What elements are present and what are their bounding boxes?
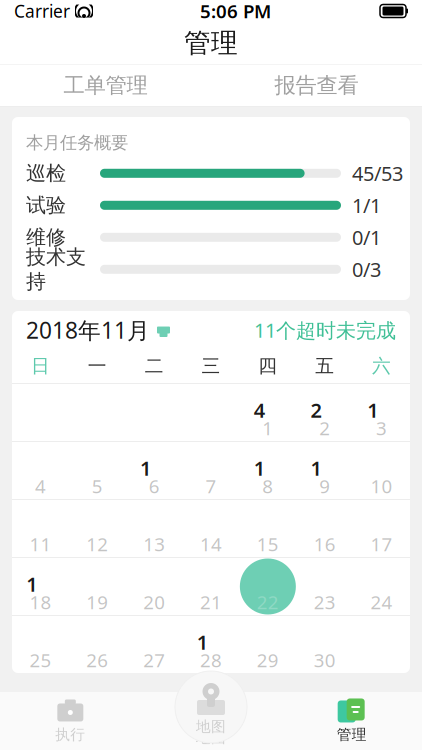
button[interactable] [296,500,353,557]
staticText: 9 [319,474,330,498]
staticText: 管理 [337,725,367,743]
staticText: 2 [310,397,321,423]
staticText [313,571,318,597]
staticText: 地图 [196,728,226,746]
button[interactable] [183,500,239,557]
staticText: 维修 [26,225,66,250]
button[interactable] [69,616,126,673]
button[interactable]: 执行 [0,693,141,749]
staticText: 28 [200,648,222,672]
staticText: 10 [371,474,393,498]
button[interactable] [12,500,69,557]
staticText: 0/3 [352,256,381,283]
staticText [143,571,148,597]
staticText: 3 [376,416,387,440]
button[interactable]: 2018年11月 [26,315,170,345]
button[interactable] [126,500,183,557]
staticText [313,629,318,655]
button[interactable]: 11个超时未完成 [254,317,396,343]
staticText: 19 [86,590,108,614]
staticText: 29 [257,648,279,672]
staticText: 45/53 [352,160,403,187]
staticText: 管理 [184,27,238,59]
button[interactable]: 工单管理 [0,64,211,106]
staticText [86,629,91,655]
button[interactable] [296,558,353,615]
button[interactable]: 1 [12,558,69,615]
button[interactable] [353,442,410,499]
staticText: 22 [257,590,279,614]
button[interactable] [69,500,126,557]
button[interactable]: 4 [239,384,296,441]
button[interactable]: 1 [126,442,183,499]
button[interactable]: 1 [353,384,410,441]
staticText: 7 [205,474,216,498]
staticText: 0/1 [352,224,381,251]
button[interactable] [353,500,410,557]
button[interactable] [126,616,183,673]
button[interactable]: 报告查看 [211,64,422,106]
staticText: 三 [201,354,220,377]
staticText: 23 [314,590,336,614]
staticText: 1 [140,455,151,481]
staticText: 27 [143,648,165,672]
staticText: 试验 [26,193,66,218]
button[interactable] [12,616,69,673]
button[interactable] [183,442,239,499]
staticText: 17 [371,532,393,556]
staticText: 24 [371,590,393,614]
button[interactable] [126,558,183,615]
button[interactable]: 1 [183,616,239,673]
staticText: 本月任务概要 [26,132,128,153]
button[interactable]: 管理 [281,693,422,749]
staticText: 1 [26,571,37,597]
button[interactable]: 1 [239,442,296,499]
staticText: 地图 [196,717,226,735]
staticText: 日 [31,354,50,377]
button[interactable] [69,558,126,615]
button[interactable] [239,616,296,673]
staticText: 一 [88,354,107,377]
staticText: 2 [319,416,330,440]
button[interactable]: 2 [296,384,353,441]
staticText [200,571,205,597]
staticText: 工单管理 [63,72,147,99]
button[interactable] [239,558,296,615]
staticText: 四 [258,354,277,377]
staticText [257,629,262,655]
button[interactable]: 地图 [141,693,281,749]
button[interactable] [296,616,353,673]
button[interactable] [183,558,239,615]
staticText: 技术支持 [26,245,86,294]
staticText: 4 [35,474,46,498]
button[interactable] [69,442,126,499]
staticText: 报告查看 [274,72,358,99]
staticText: 1 [262,416,273,440]
button[interactable] [353,558,410,615]
staticText: 30 [314,648,336,672]
staticText [29,629,34,655]
staticText: 1/1 [352,192,381,219]
button[interactable] [239,500,296,557]
staticText: 15 [257,532,279,556]
button[interactable] [12,442,69,499]
staticText: 5:06 PM [200,0,271,23]
button[interactable]: 1 [296,442,353,499]
